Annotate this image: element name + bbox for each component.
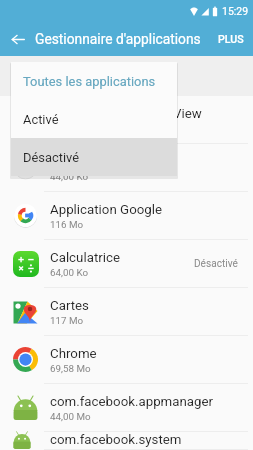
staticText: 44,00 Ko <box>50 171 88 182</box>
button[interactable]: Cartes <box>0 288 253 336</box>
staticText: 64,00 Ko <box>50 267 88 278</box>
button[interactable]: Appareil photo <box>0 144 253 192</box>
button[interactable]: Activé <box>11 100 177 138</box>
staticText: com.facebook.appmanager <box>50 394 214 410</box>
button[interactable]: Désactivé <box>11 138 177 176</box>
staticText: 116 Mo <box>50 219 84 230</box>
button[interactable]: Back <box>0 22 35 56</box>
button[interactable]: com.facebook.system <box>0 432 253 450</box>
button[interactable]: com.facebook.appmanager <box>0 384 253 432</box>
staticText: Calculatrice <box>50 250 120 266</box>
button[interactable]: Application Google <box>0 192 253 240</box>
button[interactable]: Calculatrice <box>0 240 253 288</box>
staticText: Chrome <box>50 346 97 362</box>
staticText: 69,58 Mo <box>50 363 91 374</box>
staticText: com.facebook.system <box>50 432 182 448</box>
button[interactable]: Toutes les applications <box>11 62 177 100</box>
staticText: Désactivé <box>194 258 238 270</box>
staticText: PLUS <box>218 33 244 45</box>
button[interactable]: Chrome <box>0 336 253 384</box>
button[interactable]: Android System WebView <box>0 96 253 144</box>
staticText: Cartes <box>50 298 89 314</box>
staticText: 44,00 Mo <box>50 411 91 422</box>
staticText: Android System WebView <box>50 106 202 122</box>
staticText: Toutes les applications <box>23 74 156 89</box>
staticText: 15:29 <box>222 5 249 17</box>
staticText: Appareil photo <box>50 154 137 170</box>
staticText: 117 Mo <box>50 315 84 326</box>
staticText: Activé <box>23 112 59 127</box>
staticText: Application Google <box>50 202 163 218</box>
staticText: Désactivé <box>23 150 80 165</box>
staticText: Gestionnaire d'applications <box>35 31 201 47</box>
button[interactable]: PLUS <box>209 25 253 53</box>
staticText: 44,00 Ko <box>50 123 88 134</box>
